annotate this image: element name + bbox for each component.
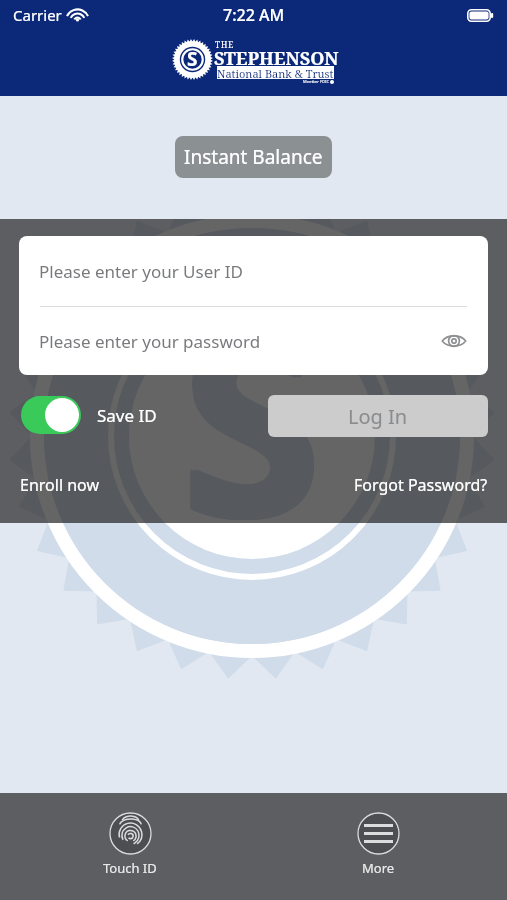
staticText: Please enter your password — [39, 330, 261, 353]
button[interactable]: Forgot Password? — [354, 474, 488, 496]
staticText: Log In — [348, 403, 408, 430]
staticText: Please enter your User ID — [39, 260, 243, 283]
button[interactable]: More — [335, 793, 421, 887]
staticText: S — [185, 244, 324, 587]
other: More — [357, 812, 400, 855]
staticText: Enroll now — [20, 474, 99, 496]
staticText: THE — [215, 39, 235, 50]
staticText: Carrier — [13, 5, 62, 25]
staticText: S — [179, 248, 318, 591]
staticText: More — [362, 859, 395, 877]
button[interactable]: Please enter your User ID — [19, 236, 488, 306]
staticText: Forgot Password? — [354, 474, 488, 496]
staticText: S — [187, 46, 198, 72]
button[interactable]: Show password — [439, 326, 469, 356]
staticText: 7:22 AM — [223, 4, 285, 26]
button[interactable]: Touch ID — [87, 793, 173, 887]
staticText: S — [179, 244, 318, 587]
staticText: S — [182, 248, 321, 591]
staticText: Save ID — [97, 404, 157, 427]
button[interactable]: Log In — [268, 395, 488, 437]
staticText: STEPHENSON — [214, 46, 339, 71]
button[interactable]: Save ID — [21, 396, 157, 434]
staticText: Instant Balance — [184, 144, 323, 170]
staticText: Touch ID — [103, 859, 157, 877]
staticText: S — [179, 246, 318, 589]
button[interactable]: Please enter your password — [19, 307, 488, 375]
staticText: S — [185, 248, 324, 591]
staticText: National Bank & Trust — [217, 66, 334, 79]
staticText: S — [182, 246, 321, 589]
staticText: Member FDIC — [303, 79, 329, 84]
button[interactable]: Instant Balance — [175, 136, 332, 178]
other: Touch ID — [109, 812, 152, 855]
staticText: S — [182, 244, 321, 587]
staticText: S — [185, 246, 324, 589]
button[interactable]: Enroll now — [20, 474, 99, 496]
